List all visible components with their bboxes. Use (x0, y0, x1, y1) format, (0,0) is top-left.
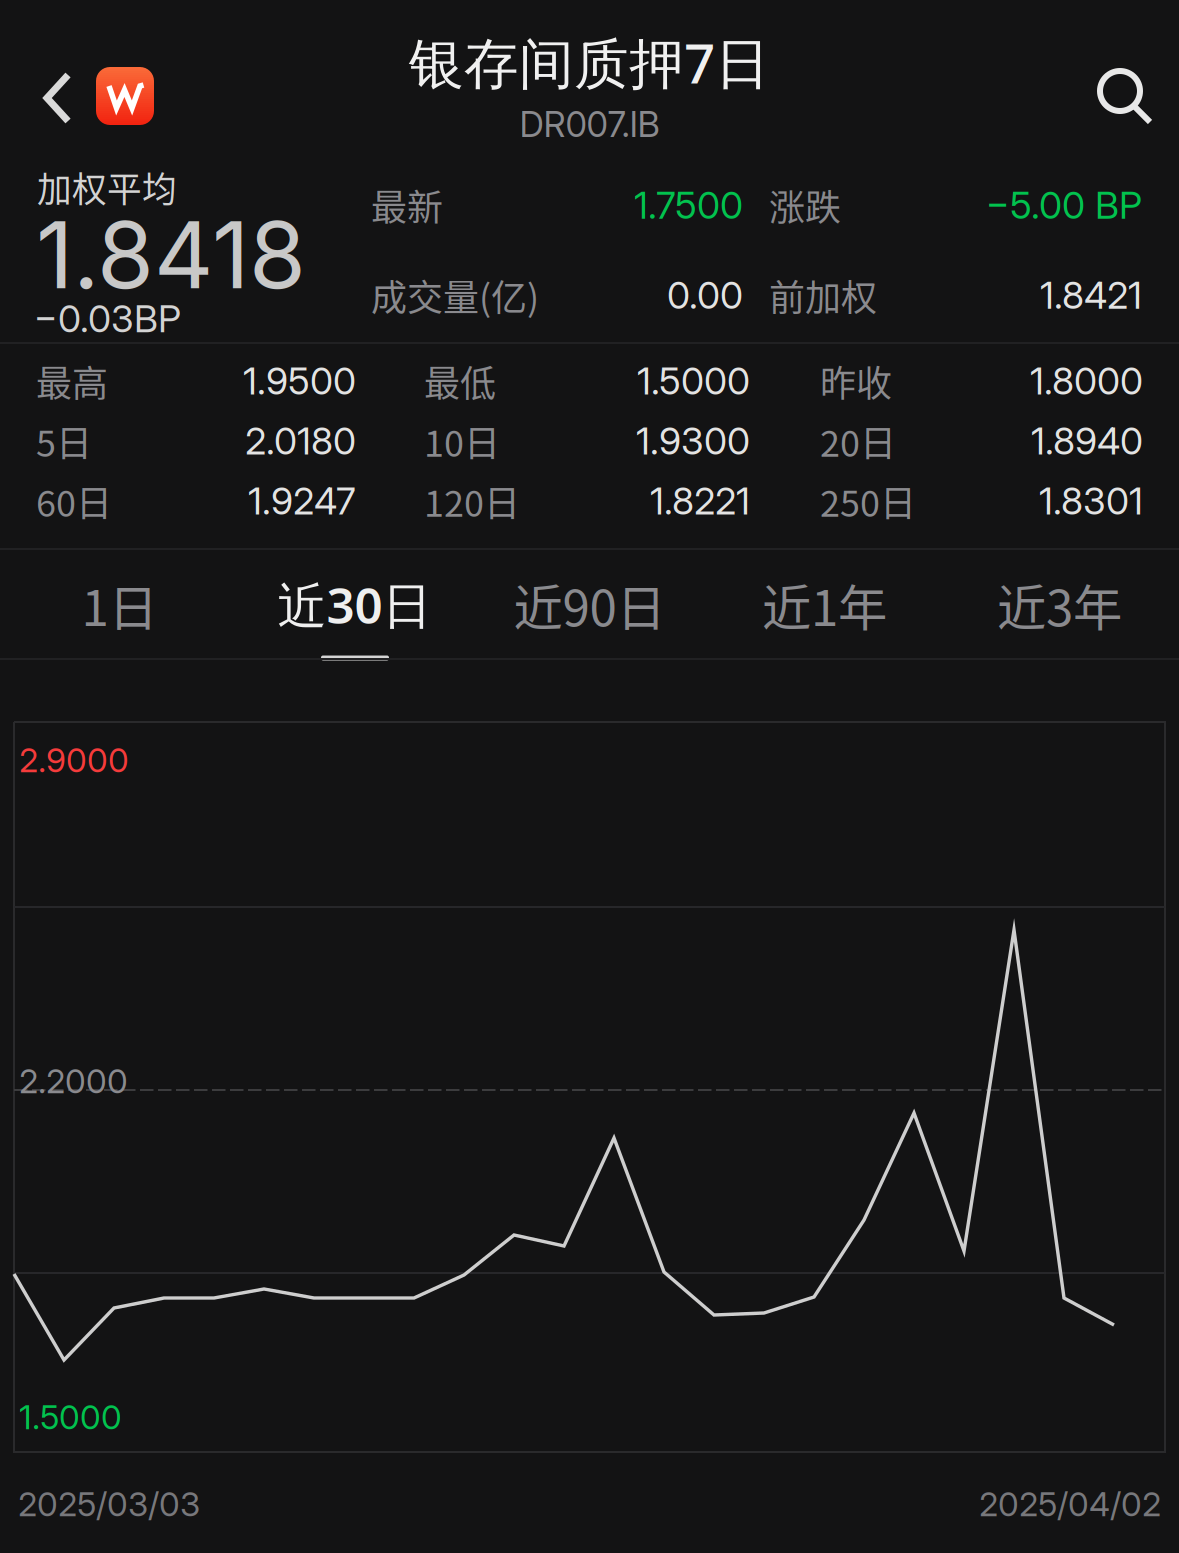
button[interactable]: Search (1096, 68, 1156, 128)
staticText: 10日 (424, 415, 500, 467)
staticText: 成交量(亿) (371, 269, 539, 321)
staticText: 1.8000 (1030, 358, 1143, 404)
staticText: 2.9000 (19, 740, 129, 780)
staticText: 加权平均 (37, 162, 177, 212)
staticText: 近30日 (277, 571, 431, 638)
staticText: 2.0180 (245, 418, 356, 464)
staticText: 1.8421 (1040, 273, 1142, 318)
staticText: 1.9247 (248, 478, 356, 524)
staticText: 最高 (36, 355, 108, 407)
button[interactable]: 近30日 (237, 550, 472, 657)
staticText: DR007.IB (519, 103, 659, 145)
staticText: 1.5000 (637, 358, 750, 404)
staticText: 近1年 (762, 569, 887, 640)
staticText: 120日 (424, 475, 520, 527)
button[interactable]: Back (40, 69, 78, 127)
staticText: 1.9300 (636, 418, 750, 464)
button[interactable]: 近3年 (942, 550, 1177, 657)
button[interactable]: 1日 (2, 550, 237, 657)
button[interactable]: Wind home (96, 67, 154, 125)
staticText: 涨跌 (769, 179, 841, 231)
staticText: 2.2000 (19, 1061, 128, 1101)
staticText: 2025/04/02 (979, 1484, 1161, 1524)
staticText: 最低 (424, 355, 496, 407)
staticText: 1.8301 (1039, 478, 1143, 524)
staticText: 前加权 (769, 269, 877, 321)
staticText: 银存间质押7日 (409, 25, 770, 99)
staticText: 1.7500 (634, 182, 743, 228)
staticText: 1.8418 (36, 199, 306, 310)
staticText: 1日 (81, 569, 157, 640)
staticText: −5.00 BP (986, 182, 1142, 228)
staticText: 近90日 (513, 569, 665, 640)
staticText: 昨收 (820, 355, 892, 407)
button[interactable]: 近1年 (707, 550, 942, 657)
staticText: 近3年 (997, 569, 1122, 640)
staticText: 1.9500 (243, 358, 356, 404)
staticText: 1.8940 (1031, 418, 1143, 464)
staticText: 1.8221 (650, 478, 750, 524)
staticText: 2025/03/03 (18, 1484, 200, 1524)
staticText: 60日 (36, 475, 112, 527)
staticText: −0.03BP (34, 296, 181, 341)
staticText: 1.5000 (19, 1397, 122, 1437)
staticText: 0.00 (667, 273, 743, 318)
staticText: 20日 (820, 415, 896, 467)
staticText: 250日 (820, 475, 916, 527)
staticText: 5日 (36, 415, 92, 467)
button[interactable]: 近90日 (472, 550, 707, 657)
staticText: 最新 (371, 179, 443, 231)
